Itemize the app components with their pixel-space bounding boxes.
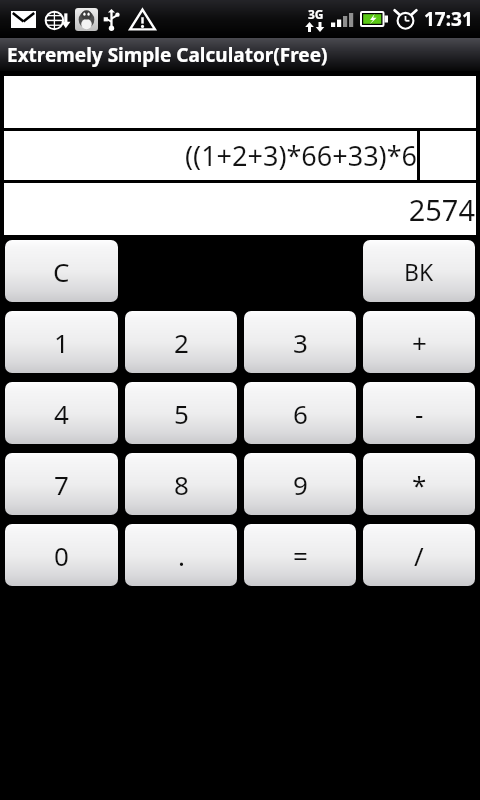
button[interactable]: 7 xyxy=(5,453,118,515)
staticText: 17:31 xyxy=(424,6,473,32)
staticText: 8 xyxy=(174,467,189,502)
button[interactable]: 0 xyxy=(5,524,118,586)
button[interactable]: Decimal point xyxy=(125,524,237,586)
button[interactable]: Divide xyxy=(363,524,475,586)
button[interactable]: ((1+2+3)*66+33)*6 xyxy=(4,131,417,180)
button[interactable]: Clear xyxy=(5,240,118,302)
staticText: - xyxy=(415,396,424,431)
staticText: = xyxy=(293,538,308,573)
staticText: 6 xyxy=(293,396,308,431)
button[interactable]: 8 xyxy=(125,453,237,515)
staticText: 5 xyxy=(174,396,189,431)
staticText: / xyxy=(414,538,424,573)
staticText: 0 xyxy=(54,538,69,573)
staticText: C xyxy=(53,254,70,289)
button[interactable]: Backspace xyxy=(363,240,475,302)
button[interactable]: Equals xyxy=(244,524,356,586)
staticText: 4 xyxy=(54,396,69,431)
staticText: 3 xyxy=(293,325,308,360)
button[interactable]: 2 xyxy=(125,311,237,373)
staticText: 7 xyxy=(54,467,69,502)
button[interactable]: 9 xyxy=(244,453,356,515)
staticText: Extremely Simple Calculator(Free) xyxy=(7,42,328,68)
button[interactable]: 3 xyxy=(244,311,356,373)
staticText: ((1+2+3)*66+33)*6 xyxy=(184,137,417,174)
staticText: 3G xyxy=(308,6,324,22)
staticText: 2 xyxy=(174,325,189,360)
staticText: * xyxy=(412,467,427,502)
button[interactable]: Minus xyxy=(363,382,475,444)
button[interactable]: 6 xyxy=(244,382,356,444)
button[interactable]: 5 xyxy=(125,382,237,444)
button[interactable]: 1 xyxy=(5,311,118,373)
staticText: BK xyxy=(404,256,434,287)
staticText: . xyxy=(178,538,185,573)
staticText: 9 xyxy=(293,467,308,502)
staticText: 1 xyxy=(54,325,69,360)
button[interactable]: Plus xyxy=(363,311,475,373)
staticText: 2574 xyxy=(408,190,475,229)
button[interactable]: 4 xyxy=(5,382,118,444)
button[interactable]: Multiply xyxy=(363,453,475,515)
staticText: + xyxy=(412,325,427,360)
button[interactable]: 2574 xyxy=(4,183,476,235)
